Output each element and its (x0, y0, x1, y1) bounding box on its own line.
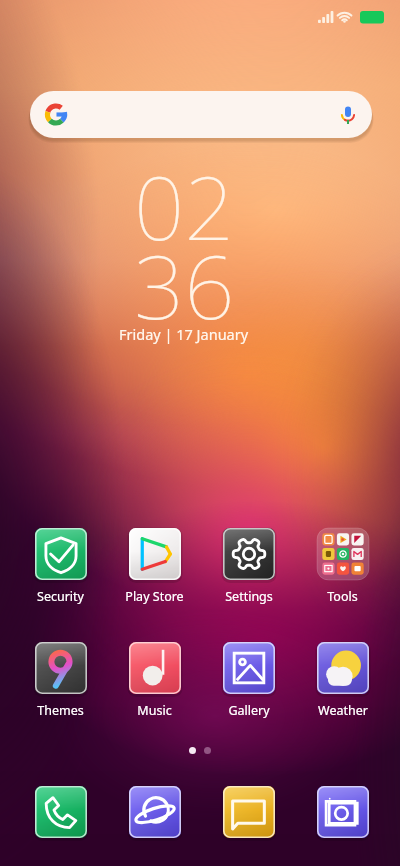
button[interactable]: Messages (208, 786, 289, 838)
button[interactable]: Settings (208, 528, 289, 605)
staticText: Music (137, 702, 172, 719)
button[interactable]: Themes (20, 642, 101, 719)
staticText: 02 (134, 146, 235, 266)
staticText: Play Store (125, 588, 184, 605)
staticText: 36 (134, 225, 235, 345)
button[interactable]: 02 (0, 146, 384, 406)
button[interactable]: Play Store (114, 528, 195, 605)
staticText: Weather (318, 702, 368, 719)
button[interactable]: Music (114, 642, 195, 719)
button[interactable]: Search (30, 91, 372, 138)
button[interactable]: Gallery (208, 642, 289, 719)
staticText: Security (37, 588, 84, 605)
staticText: Friday | 17 January (119, 324, 249, 344)
button[interactable]: Browser (114, 786, 195, 838)
staticText: Gallery (228, 702, 270, 719)
button[interactable]: Weather (302, 642, 383, 719)
staticText: Tools (327, 588, 358, 605)
button[interactable]: Tools (302, 528, 383, 605)
button[interactable]: Security (20, 528, 101, 605)
staticText: Settings (225, 588, 273, 605)
button[interactable]: Phone (20, 786, 101, 838)
staticText: Themes (37, 702, 84, 719)
button[interactable]: Camera (302, 786, 383, 838)
